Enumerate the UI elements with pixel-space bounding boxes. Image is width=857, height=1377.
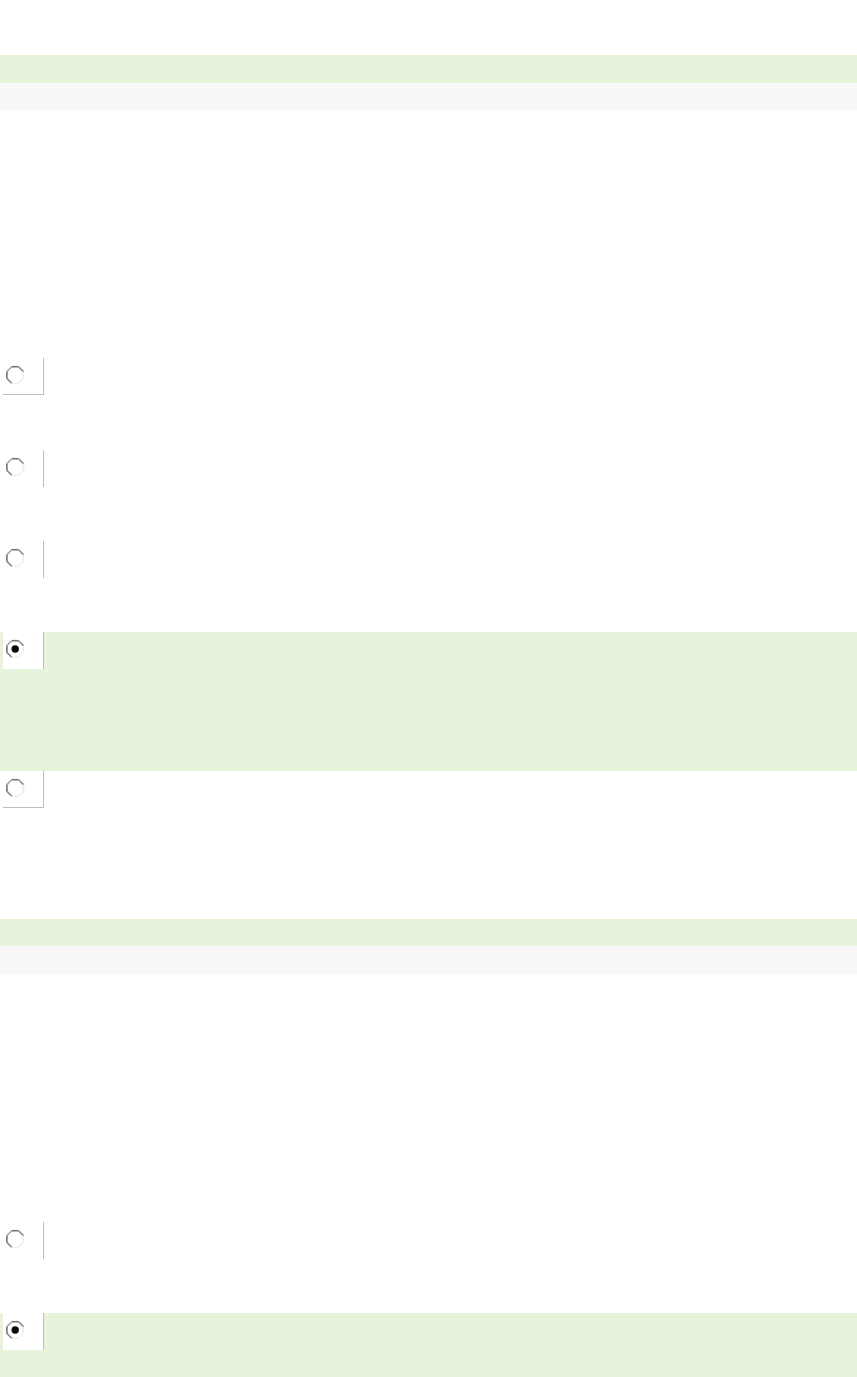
- button[interactable]: Answer option 1: [0, 1222, 857, 1259]
- button[interactable]: Answer option 2, selected: [0, 1313, 857, 1377]
- button[interactable]: Answer option 3: [0, 541, 857, 578]
- button[interactable]: Answer option 1: [0, 358, 857, 395]
- button[interactable]: Answer option 4, selected: [0, 632, 857, 771]
- button[interactable]: Answer option 2: [0, 450, 857, 487]
- button[interactable]: Answer option 5: [0, 771, 857, 808]
